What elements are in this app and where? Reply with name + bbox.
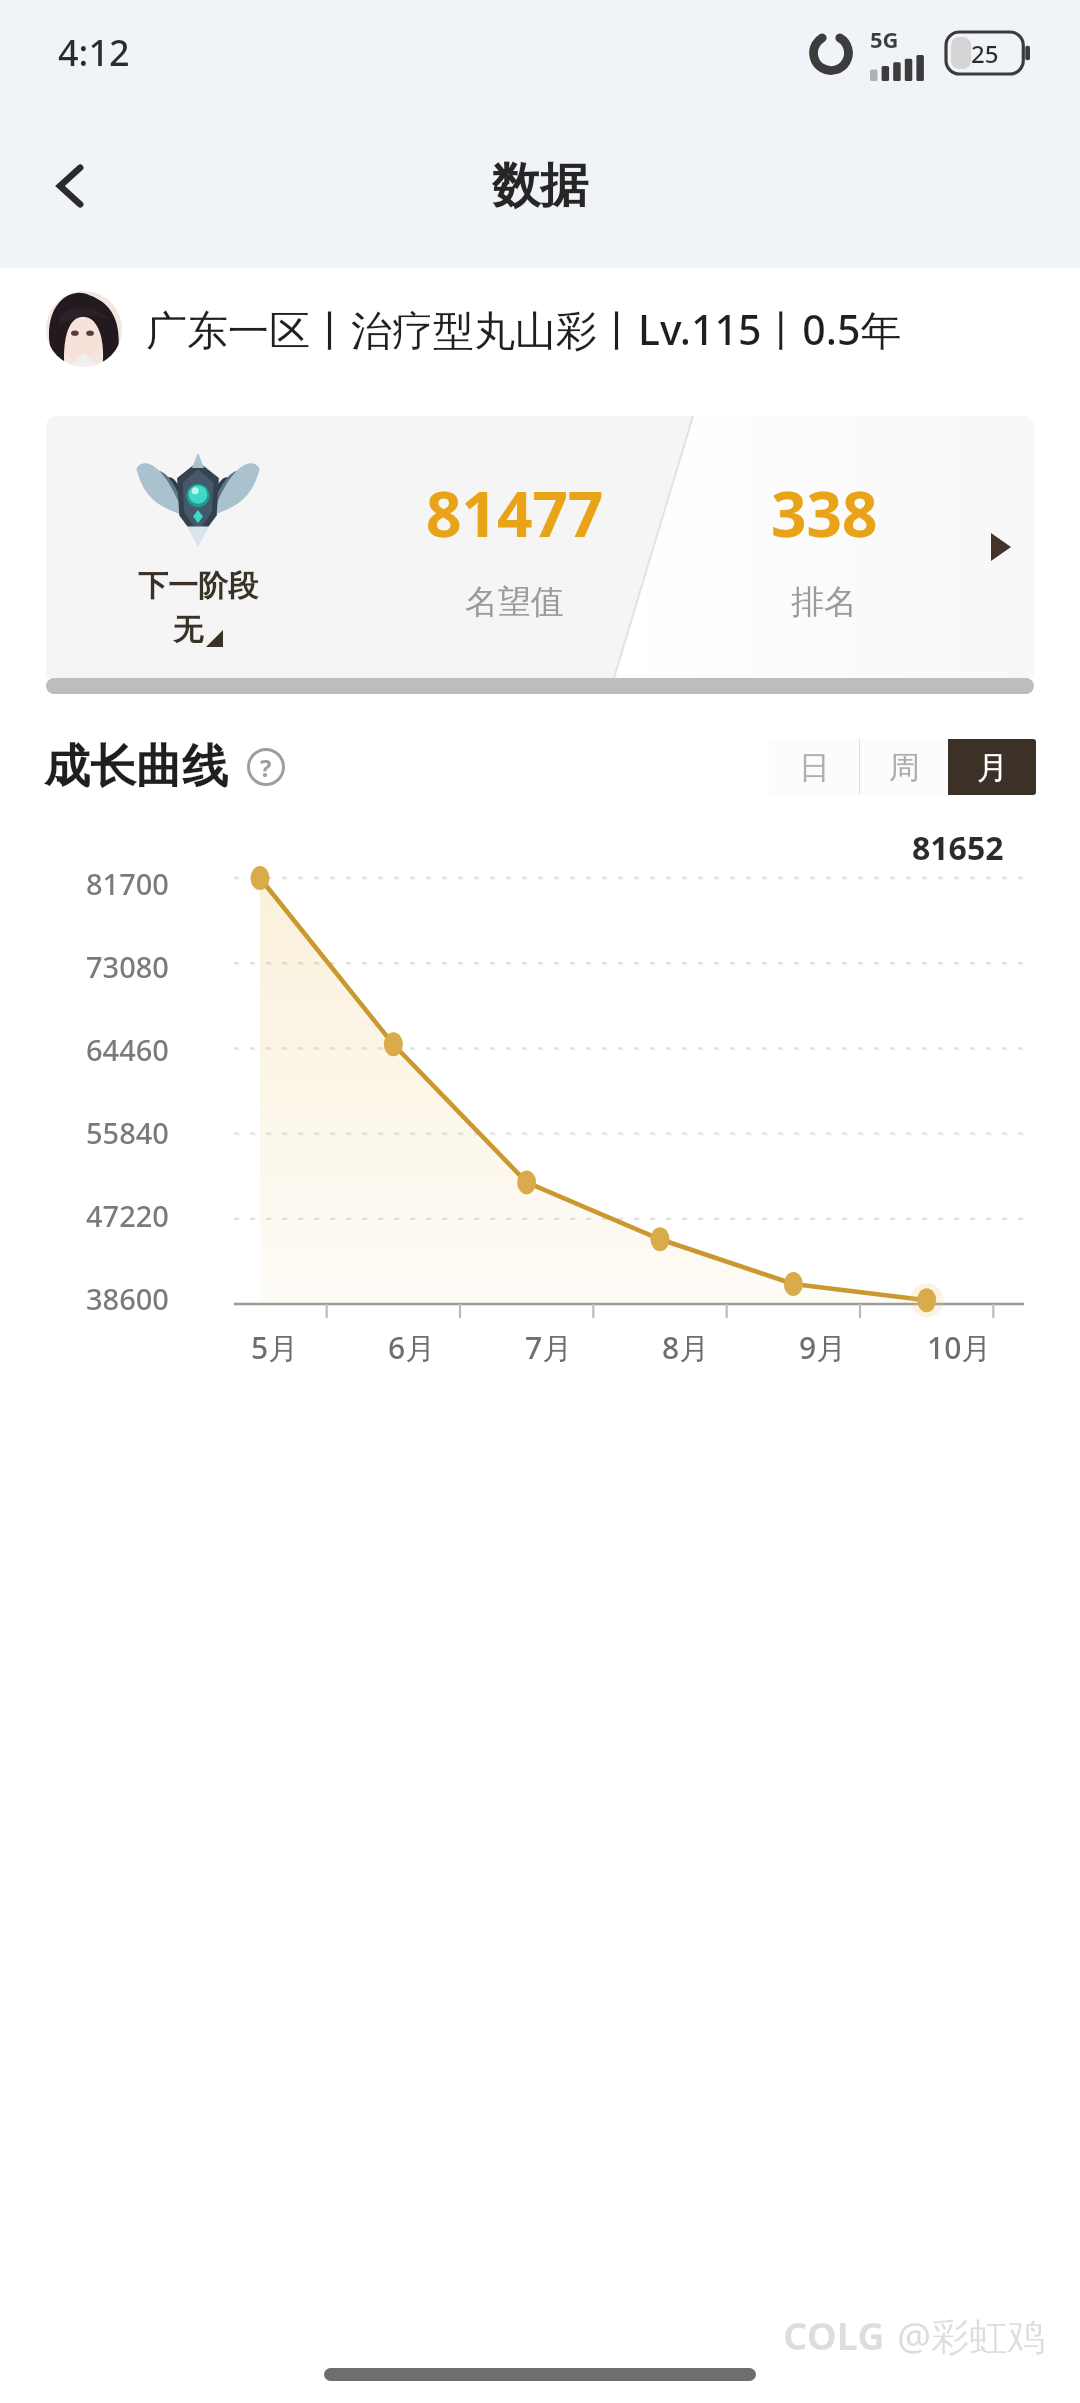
staticText: 广东一区丨治疗型丸山彩丨Lv.115丨0.5年 (146, 301, 902, 357)
staticText: 月 (977, 748, 1008, 787)
staticText: 成长曲线 (44, 738, 228, 796)
staticText: 周 (889, 748, 920, 787)
staticText: 排名 (791, 581, 857, 623)
staticText: 73080 (86, 947, 169, 986)
staticText: 7月 (525, 1327, 573, 1368)
button[interactable]: Back (26, 141, 116, 231)
staticText: 6月 (388, 1327, 436, 1368)
staticText: 81652 (912, 826, 1004, 870)
staticText: 4:12 (58, 28, 130, 77)
staticText: 下一阶段 (138, 567, 258, 605)
button[interactable]: 广东一区丨治疗型丸山彩丨Lv.115丨0.5年 (0, 268, 1080, 390)
staticText: 9月 (799, 1327, 847, 1368)
staticText: 25 (971, 37, 999, 70)
button[interactable]: 日 (769, 739, 859, 795)
staticText: 55840 (86, 1113, 169, 1152)
staticText: 数据 (492, 156, 588, 216)
staticText: 日 (799, 748, 830, 787)
staticText: 338 (771, 471, 878, 555)
staticText: 8月 (662, 1327, 710, 1368)
button[interactable]: 月 (948, 739, 1036, 795)
button[interactable]: 周 (860, 739, 948, 795)
staticText: 38600 (86, 1279, 169, 1318)
staticText: COLG (783, 2309, 885, 2361)
staticText: 64460 (86, 1030, 169, 1069)
staticText: 81477 (426, 471, 604, 555)
button[interactable]: Help (244, 745, 288, 789)
staticText: 81700 (86, 864, 169, 903)
staticText: 10月 (927, 1327, 992, 1368)
staticText: 47220 (86, 1196, 169, 1235)
button[interactable]: More (968, 416, 1034, 678)
staticText: 名望值 (465, 581, 564, 623)
staticText: ? (260, 751, 272, 784)
staticText: 5月 (251, 1327, 299, 1368)
staticText: @彩虹鸡 (897, 2309, 1046, 2361)
staticText: 5G (870, 24, 899, 54)
staticText: 无 (173, 611, 203, 649)
button[interactable]: 下一阶段 (46, 416, 1034, 678)
